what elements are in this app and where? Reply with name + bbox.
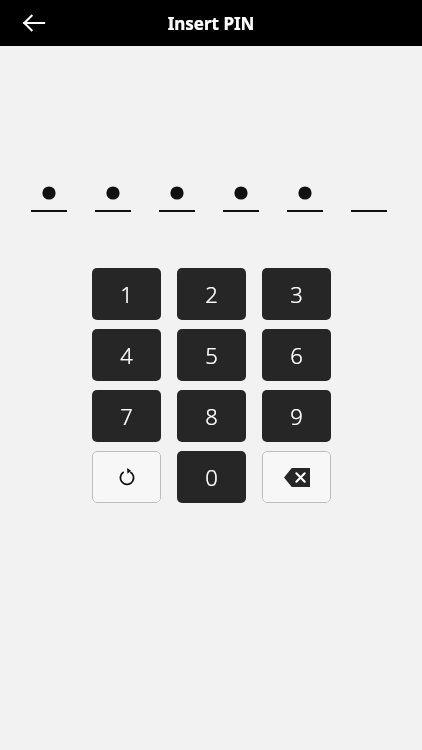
button[interactable]: Reset PIN	[92, 451, 161, 503]
button[interactable]: Back	[11, 0, 57, 46]
button[interactable]: 4	[92, 329, 161, 381]
staticText: 0	[205, 462, 218, 492]
button[interactable]: 0	[177, 451, 246, 503]
button[interactable]: 3	[262, 268, 331, 320]
button[interactable]: 2	[177, 268, 246, 320]
staticText: 6	[290, 340, 303, 370]
staticText: 1	[120, 279, 133, 309]
staticText: 2	[205, 279, 218, 309]
button[interactable]: 8	[177, 390, 246, 442]
button[interactable]: 1	[92, 268, 161, 320]
staticText: 9	[290, 401, 303, 431]
staticText: 8	[205, 401, 218, 431]
button[interactable]: 5	[177, 329, 246, 381]
button[interactable]: 7	[92, 390, 161, 442]
staticText: 4	[120, 340, 133, 370]
staticText: Insert PIN	[0, 12, 422, 35]
staticText: 5	[205, 340, 218, 370]
staticText: 3	[290, 279, 303, 309]
button[interactable]: 9	[262, 390, 331, 442]
button[interactable]: 6	[262, 329, 331, 381]
button[interactable]: Backspace	[262, 451, 331, 503]
staticText: 7	[120, 401, 133, 431]
